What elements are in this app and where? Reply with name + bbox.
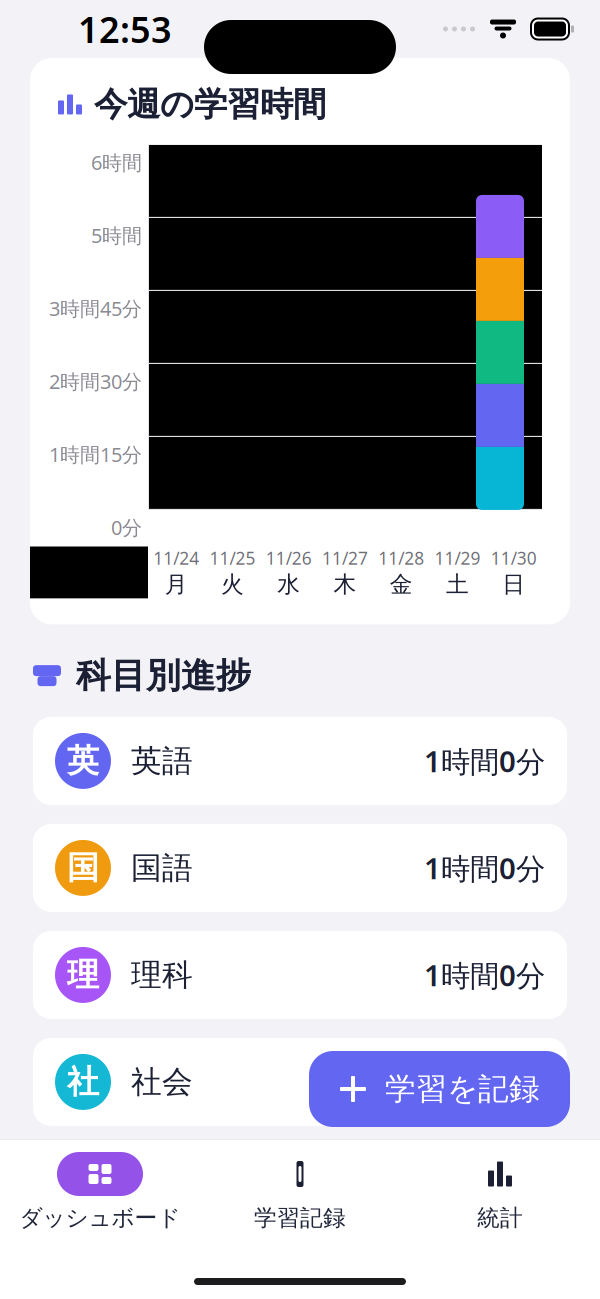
staticText: 国語 (131, 849, 193, 887)
staticText: 11/26 (266, 546, 312, 569)
staticText: 社会 (131, 1063, 193, 1101)
staticText: ダッシュボード (19, 1204, 180, 1232)
staticText: 1時間0分 (424, 1169, 545, 1208)
button[interactable]: 統計 (400, 1152, 600, 1232)
staticText: 理科 (131, 956, 193, 994)
staticText: 1時間0分 (424, 955, 545, 994)
staticText: 11/29 (435, 546, 481, 569)
button[interactable]: 国 (33, 824, 567, 912)
staticText: 12:53 (78, 5, 172, 53)
staticText: 木 (333, 570, 356, 598)
staticText: 5時間 (91, 222, 142, 248)
button[interactable]: ダッシュボード (0, 1152, 200, 1232)
staticText: 数学 (131, 1170, 193, 1208)
staticText: 火 (221, 570, 244, 598)
staticText: 金 (390, 570, 413, 598)
staticText: 科目別進捗 (76, 654, 251, 697)
staticText: 統計 (477, 1204, 523, 1232)
staticText: 今週の学習時間 (94, 84, 326, 125)
staticText: 国 (67, 848, 99, 888)
button[interactable]: 社 (33, 1038, 567, 1126)
staticText: 日 (502, 570, 525, 598)
staticText: 英 (67, 741, 99, 781)
staticText: 11/27 (322, 546, 368, 569)
staticText: 1時間15分 (49, 441, 142, 467)
staticText: 英語 (131, 742, 193, 780)
staticText: 2時間30分 (49, 368, 142, 394)
button[interactable]: 英 (33, 717, 567, 805)
staticText: 社 (67, 1062, 99, 1102)
staticText: 数 (67, 1169, 99, 1209)
button[interactable]: 学習を記録 (309, 1051, 570, 1127)
button[interactable]: 理 (33, 931, 567, 1019)
staticText: 水 (277, 570, 300, 598)
staticText: 学習記録 (254, 1204, 346, 1232)
staticText: 11/28 (378, 546, 424, 569)
staticText: 0分 (111, 514, 142, 540)
staticText: 理 (67, 955, 99, 995)
staticText: 1時間0分 (424, 741, 545, 780)
staticText: 1時間0分 (424, 1062, 545, 1101)
staticText: 1時間0分 (424, 848, 545, 887)
staticText: 3時間45分 (49, 295, 142, 321)
button[interactable]: 数 (33, 1145, 567, 1233)
staticText: 6時間 (91, 149, 142, 175)
staticText: 土 (446, 570, 469, 598)
staticText: 11/30 (491, 546, 537, 569)
staticText: 月 (165, 570, 188, 598)
staticText: 学習を記録 (385, 1070, 540, 1108)
button[interactable]: 学習記録 (200, 1152, 400, 1232)
staticText: 11/25 (209, 546, 255, 569)
staticText: 11/24 (153, 546, 199, 569)
